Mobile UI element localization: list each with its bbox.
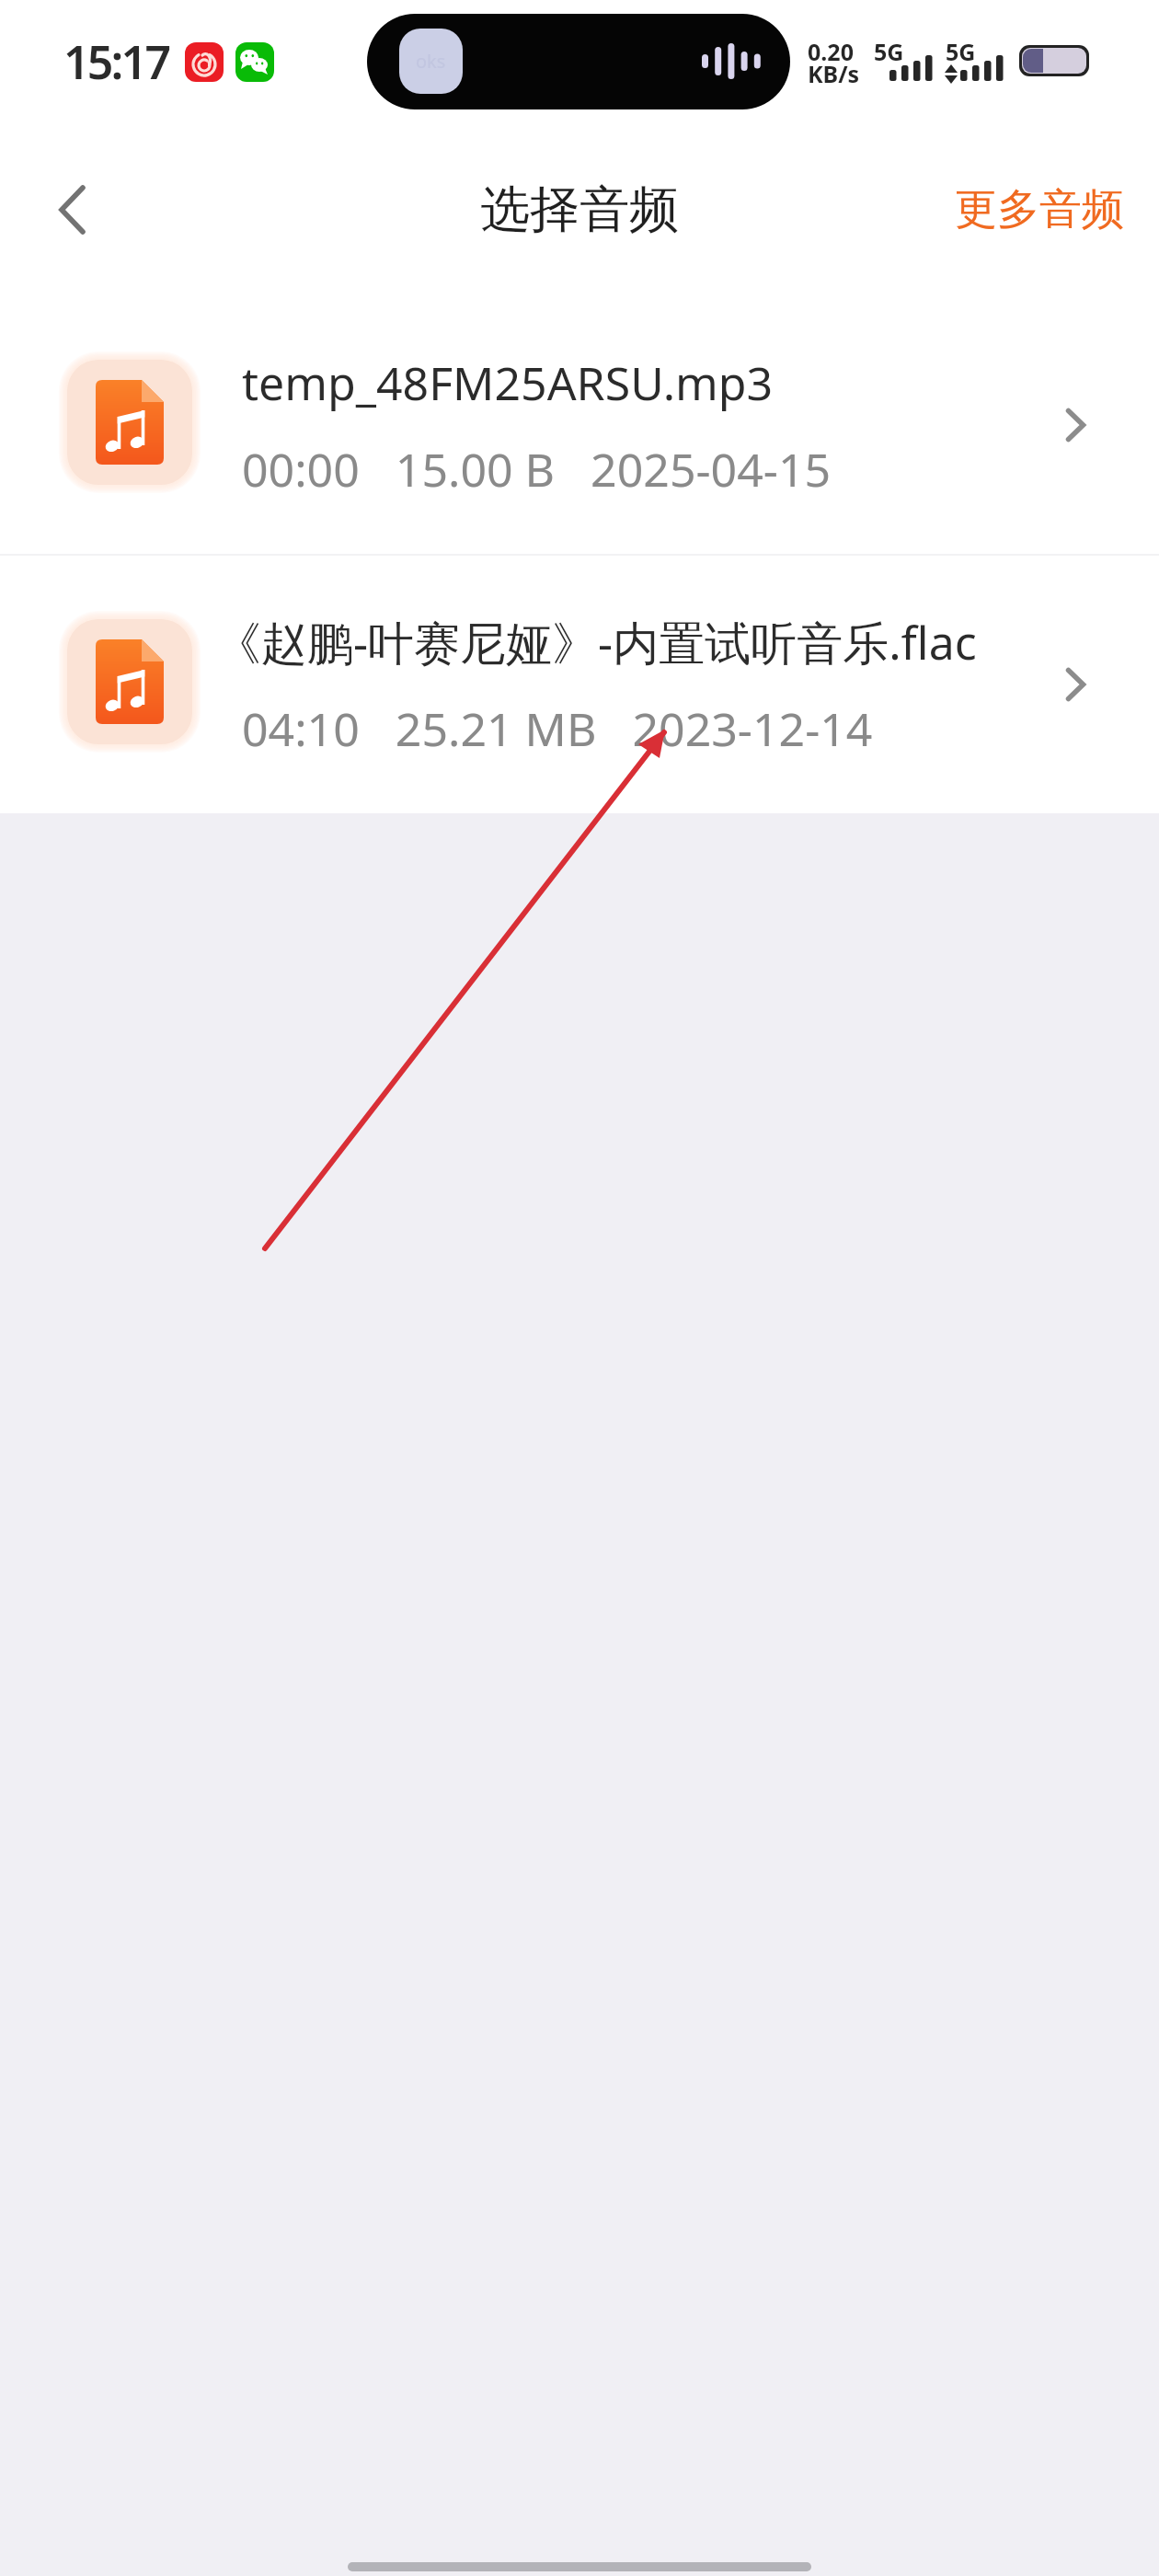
button[interactable]: Open: [1036, 385, 1115, 465]
button[interactable]: 更多音频: [931, 159, 1159, 260]
staticText: 00:00 15.00 B 2025-04-15: [242, 438, 832, 500]
button[interactable]: Back: [26, 164, 118, 256]
staticText: 15:17: [63, 30, 169, 93]
staticText: 更多音频: [955, 183, 1124, 236]
staticText: KB/s: [808, 58, 860, 89]
staticText: 5G: [874, 36, 904, 67]
staticText: 0.20: [808, 36, 854, 67]
staticText: 《赵鹏-叶赛尼娅》-内置试听音乐.flac: [215, 611, 977, 673]
button[interactable]: 《赵鹏-叶赛尼娅》-内置试听音乐.flac: [0, 556, 1159, 813]
staticText: oks: [416, 49, 446, 74]
staticText: 5G: [946, 36, 976, 67]
button[interactable]: temp_48FM25ARSU.mp3: [0, 296, 1159, 554]
button[interactable]: Open: [1036, 645, 1115, 724]
staticText: 04:10 25.21 MB 2023-12-14: [242, 697, 873, 760]
staticText: temp_48FM25ARSU.mp3: [242, 351, 774, 414]
staticText: 选择音频: [480, 178, 679, 241]
